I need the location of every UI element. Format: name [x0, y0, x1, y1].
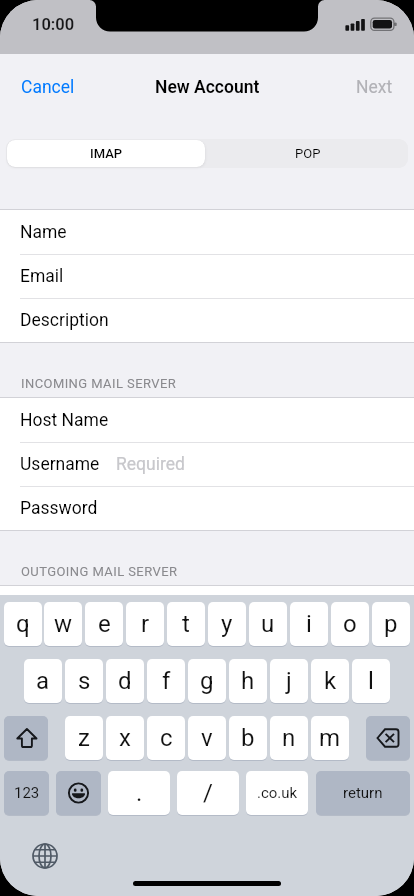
button[interactable]: s — [65, 659, 103, 703]
staticText: POP — [295, 146, 321, 161]
staticText: b — [241, 724, 255, 752]
staticText: f — [162, 667, 171, 695]
button[interactable]: f — [147, 659, 185, 703]
staticText: u — [261, 610, 275, 638]
staticText: w — [54, 610, 73, 638]
button[interactable]: q — [4, 602, 42, 646]
button[interactable]: Emoji — [56, 771, 101, 815]
staticText: s — [78, 667, 91, 695]
button[interactable]: IMAP — [7, 140, 205, 167]
button[interactable]: Description — [0, 298, 414, 342]
button[interactable]: v — [188, 716, 226, 760]
staticText: Cancel — [21, 77, 75, 98]
button[interactable]: y — [208, 602, 246, 646]
button[interactable]: a — [24, 659, 62, 703]
button[interactable]: Backspace — [366, 716, 410, 760]
staticText: / — [203, 779, 213, 807]
button[interactable]: Change keyboard — [31, 842, 59, 870]
button[interactable]: .co.uk — [246, 771, 308, 815]
staticText: m — [319, 724, 341, 752]
staticText: t — [182, 610, 190, 638]
staticText: .co.uk — [257, 784, 298, 802]
staticText: d — [118, 667, 132, 695]
button[interactable]: n — [270, 716, 308, 760]
staticText: z — [78, 724, 90, 752]
button[interactable]: Password — [0, 486, 414, 530]
staticText: . — [136, 779, 143, 807]
staticText: e — [98, 610, 111, 638]
button[interactable]: k — [311, 659, 349, 703]
staticText: q — [16, 610, 30, 638]
staticText: 10:00 — [32, 15, 75, 34]
button[interactable]: POP — [208, 140, 407, 167]
staticText: Username — [20, 454, 100, 475]
button[interactable]: 123 — [4, 771, 49, 815]
staticText: Required — [116, 454, 185, 475]
button[interactable]: m — [311, 716, 349, 760]
staticText: x — [119, 724, 131, 752]
staticText: y — [221, 610, 233, 638]
button[interactable]: p — [372, 602, 410, 646]
button[interactable]: c — [147, 716, 185, 760]
button[interactable]: . — [108, 771, 170, 815]
staticText: v — [201, 724, 213, 752]
button[interactable]: u — [249, 602, 287, 646]
button[interactable]: Host Name — [0, 398, 414, 442]
staticText: i — [306, 610, 312, 638]
button[interactable]: e — [85, 602, 123, 646]
staticText: h — [241, 667, 255, 695]
staticText: Description — [20, 310, 109, 331]
staticText: o — [343, 610, 357, 638]
staticText: INCOMING MAIL SERVER — [21, 376, 177, 391]
staticText: p — [384, 610, 398, 638]
staticText: k — [324, 667, 337, 695]
staticText: New Account — [155, 77, 260, 98]
staticText: Email — [20, 266, 64, 287]
staticText: Password — [20, 498, 98, 519]
button[interactable]: o — [331, 602, 369, 646]
button[interactable]: Shift — [4, 716, 48, 760]
staticText: g — [200, 667, 214, 695]
button[interactable]: j — [270, 659, 308, 703]
staticText: l — [368, 667, 374, 695]
button[interactable]: g — [188, 659, 226, 703]
button[interactable]: z — [65, 716, 103, 760]
button[interactable]: / — [177, 771, 239, 815]
button[interactable]: l — [352, 659, 390, 703]
button[interactable]: i — [290, 602, 328, 646]
button[interactable]: r — [126, 602, 164, 646]
button[interactable]: Cancel — [9, 69, 87, 106]
button[interactable]: d — [106, 659, 144, 703]
staticText: IMAP — [90, 146, 123, 161]
button[interactable]: w — [44, 602, 82, 646]
button[interactable]: Next — [344, 69, 405, 106]
staticText: j — [286, 667, 292, 695]
button[interactable]: Name — [0, 210, 414, 254]
staticText: return — [343, 784, 383, 802]
staticText: Name — [20, 222, 67, 243]
button[interactable]: h — [229, 659, 267, 703]
button[interactable]: t — [167, 602, 205, 646]
button[interactable]: b — [229, 716, 267, 760]
button[interactable]: x — [106, 716, 144, 760]
staticText: Host Name — [20, 410, 109, 431]
staticText: OUTGOING MAIL SERVER — [21, 564, 178, 579]
button[interactable]: return — [316, 771, 410, 815]
staticText: 123 — [14, 784, 40, 802]
staticText: a — [36, 667, 50, 695]
staticText: Next — [356, 77, 393, 98]
staticText: r — [141, 610, 150, 638]
staticText: c — [160, 724, 173, 752]
staticText: n — [282, 724, 296, 752]
button[interactable]: Username — [0, 442, 414, 486]
button[interactable]: Email — [0, 254, 414, 298]
